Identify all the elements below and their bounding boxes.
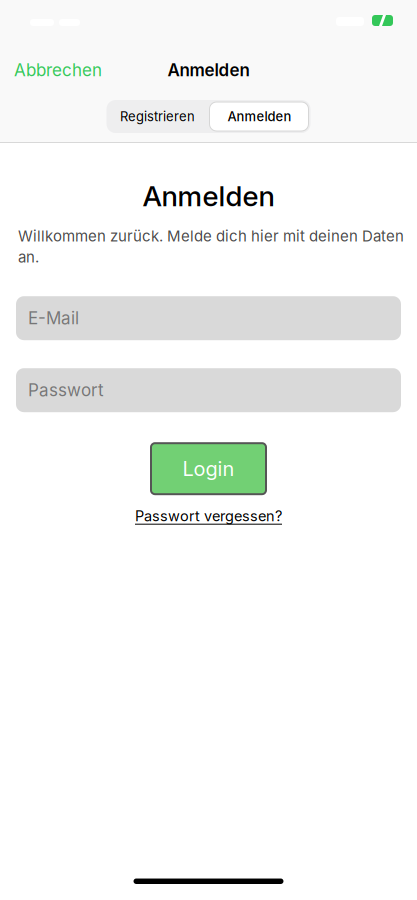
button[interactable]: Login bbox=[151, 443, 266, 494]
staticText: Anmelden bbox=[142, 179, 274, 213]
staticText: Passwort vergessen? bbox=[135, 507, 282, 525]
staticText: Registrieren bbox=[120, 109, 195, 124]
button[interactable]: Abbrechen bbox=[14, 60, 102, 80]
button[interactable]: Passwort bbox=[16, 368, 401, 412]
button[interactable]: Registrieren bbox=[106, 100, 208, 133]
staticText: Willkommen zurück. Melde dich hier mit d… bbox=[18, 227, 404, 245]
staticText: Anmelden bbox=[227, 109, 291, 124]
staticText: Abbrechen bbox=[14, 60, 102, 80]
staticText: Passwort bbox=[28, 380, 104, 400]
staticText: Login bbox=[182, 457, 234, 481]
button[interactable]: Passwort vergessen? bbox=[135, 507, 282, 525]
button[interactable]: Anmelden bbox=[208, 100, 310, 133]
staticText: Anmelden bbox=[167, 60, 249, 80]
button[interactable]: E-Mail bbox=[16, 296, 401, 340]
staticText: E-Mail bbox=[28, 308, 79, 328]
staticText: an. bbox=[18, 248, 39, 266]
